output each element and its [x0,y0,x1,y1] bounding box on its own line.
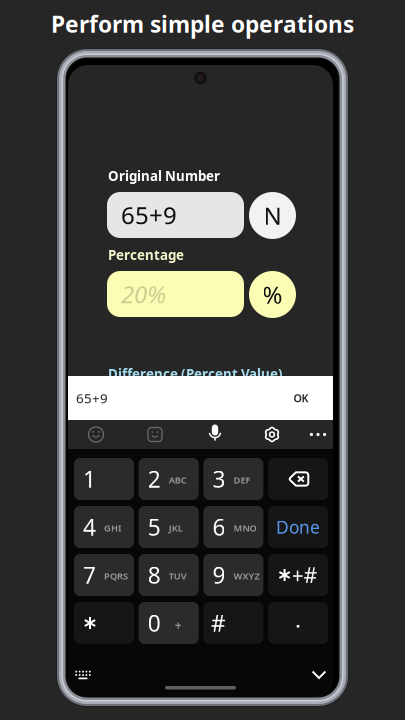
staticText: 8 [148,560,161,590]
staticText: +# [292,561,318,589]
button[interactable]: 5 [139,506,199,548]
staticText: Done [276,515,320,538]
staticText: Percentage [108,246,184,264]
staticText: JKL [169,522,183,534]
button[interactable]: Backspace [268,458,328,500]
staticText: 7 [83,560,96,590]
staticText: 3 [212,464,225,494]
staticText: 65+9 [121,199,177,231]
staticText: 9 [212,560,225,590]
staticText: 2 [148,464,161,494]
button[interactable]: 0 [139,602,199,644]
staticText: Perform simple operations [51,9,354,39]
staticText: DEF [233,474,250,486]
button[interactable]: 3 [203,458,263,500]
button[interactable]: Stickers [145,424,165,444]
button[interactable]: 20% [107,271,244,317]
button[interactable]: 1 [74,458,134,500]
button[interactable]: # [203,602,263,644]
staticText: N [263,200,281,231]
button[interactable]: Switch keyboard [75,669,91,681]
button[interactable]: Voice input [205,425,225,443]
staticText: Original Number [108,167,220,185]
staticText: . [295,604,301,634]
button[interactable]: 2 [139,458,199,500]
button[interactable]: Emoji [86,424,106,444]
button[interactable]: Symbols [268,554,328,596]
staticText: 4 [83,512,96,542]
staticText: 1 [83,464,96,494]
button[interactable]: 9 [203,554,263,596]
button[interactable]: Star [74,602,134,644]
button[interactable]: . [268,602,328,644]
staticText: 6 [212,512,225,542]
staticText: 0 [148,608,161,638]
staticText: Difference (Percent Value) [108,365,283,383]
button[interactable]: 8 [139,554,199,596]
button[interactable]: 65+9 [107,192,244,238]
staticText: # [211,608,226,638]
button[interactable]: 4 [74,506,134,548]
button[interactable]: More [308,425,328,443]
staticText: 65+9 [76,389,108,407]
button[interactable]: 7 [74,554,134,596]
button[interactable]: N [249,192,296,239]
staticText: + [175,617,182,633]
staticText: 5 [148,512,161,542]
staticText: PQRS [104,570,128,582]
button[interactable]: OK [284,384,318,412]
staticText: % [262,279,282,310]
staticText: TUV [169,570,187,582]
button[interactable]: Hide keyboard [311,667,327,682]
staticText: 20% [121,278,166,310]
staticText: ABC [169,474,187,486]
staticText: GHI [104,522,121,534]
staticText: MNO [233,522,256,534]
button[interactable]: Settings [262,424,282,444]
staticText: OK [293,391,308,405]
button[interactable]: % [249,271,296,318]
staticText: WXYZ [233,570,259,582]
button[interactable]: Done [268,506,328,548]
button[interactable]: 6 [203,506,263,548]
